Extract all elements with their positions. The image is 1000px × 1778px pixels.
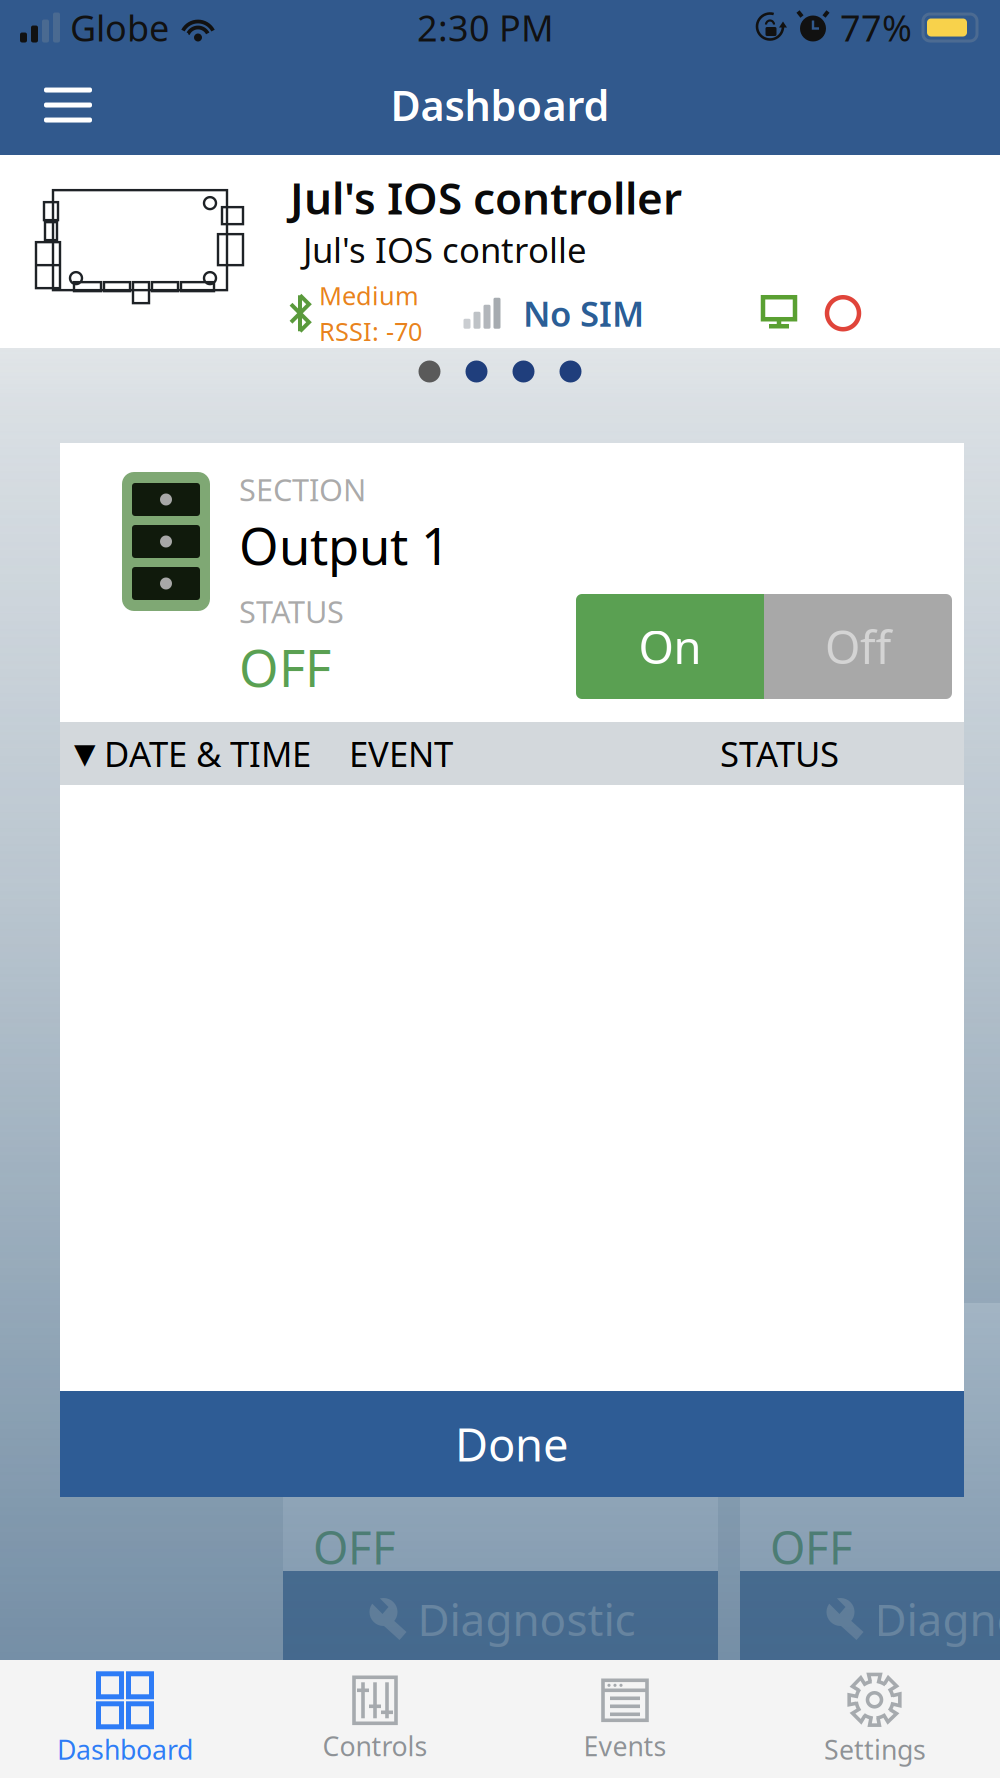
staticText: Done [455, 1414, 569, 1474]
button[interactable]: Off [764, 594, 952, 699]
button[interactable]: Settings [750, 1660, 1000, 1778]
button[interactable]: Menu [0, 71, 136, 138]
staticText: ▼ [74, 738, 96, 769]
staticText: 2:30 PM [417, 4, 554, 51]
button[interactable]: Done [60, 1391, 964, 1497]
staticText: 77% [840, 4, 912, 51]
staticText: Dashboard [57, 1732, 193, 1767]
staticText: On [638, 616, 701, 677]
staticText: Diagnostic [874, 1590, 1000, 1648]
staticText: Output 1 [239, 512, 450, 579]
staticText: Diagnostic [417, 1590, 635, 1648]
staticText: STATUS [720, 730, 839, 776]
staticText: Settings [824, 1732, 926, 1767]
staticText: OFF [313, 1517, 396, 1577]
staticText: Globe [70, 4, 169, 51]
staticText: Jul's IOS controlle [303, 227, 587, 273]
button[interactable]: Dashboard [0, 1660, 250, 1778]
button[interactable]: On [576, 594, 764, 699]
staticText: Medium [319, 279, 419, 312]
button[interactable]: Events [500, 1660, 750, 1778]
staticText: Controls [322, 1728, 427, 1764]
staticText: Off [825, 616, 891, 677]
staticText: DATE & TIME [104, 730, 311, 776]
staticText: Events [583, 1728, 666, 1764]
staticText: SECTION [239, 469, 366, 510]
staticText: No SIM [523, 290, 644, 336]
staticText: Jul's IOS controller [290, 168, 682, 226]
staticText: OFF [239, 634, 331, 701]
staticText: STATUS [239, 591, 344, 632]
staticText: RSSI: -70 [319, 314, 422, 348]
staticText: EVENT [349, 730, 453, 776]
button[interactable]: Controls [250, 1660, 500, 1778]
button[interactable]: Jul's IOS controller [0, 155, 1000, 348]
staticText: Dashboard [390, 78, 609, 132]
staticText: OFF [770, 1517, 853, 1577]
